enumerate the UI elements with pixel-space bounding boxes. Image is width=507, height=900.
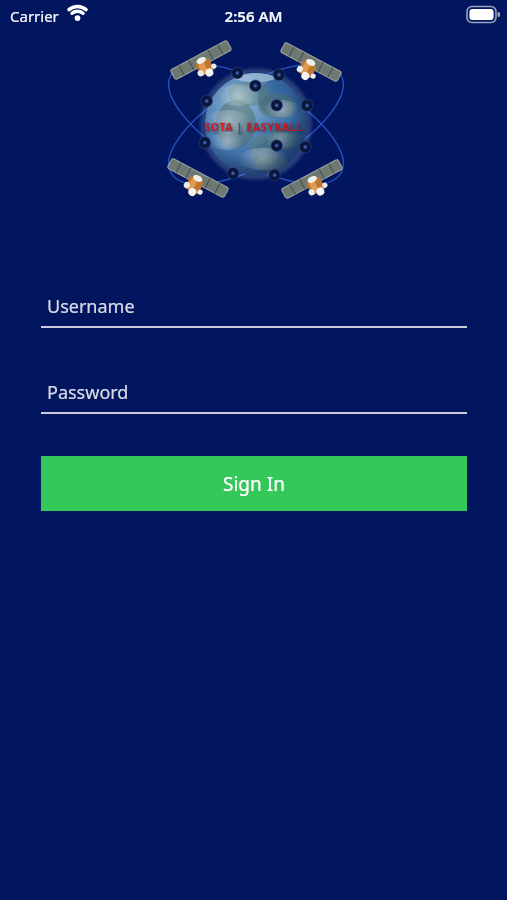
staticText: Sign In — [223, 471, 285, 497]
staticText: Username — [47, 294, 135, 319]
staticText: Carrier — [10, 6, 59, 26]
button[interactable]: Sign In — [41, 456, 467, 511]
staticText: 2:56 AM — [0, 6, 507, 26]
staticText: SOTA | EASYKALL — [0, 120, 507, 134]
staticText: Password — [47, 380, 129, 405]
